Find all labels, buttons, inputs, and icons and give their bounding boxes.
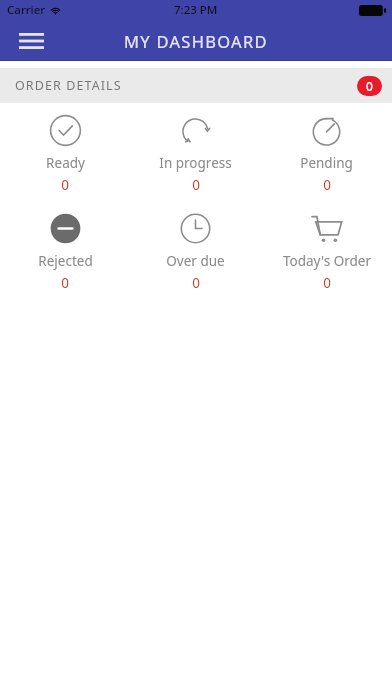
staticText: 0 (366, 78, 373, 94)
button[interactable]: Pending orders (261, 114, 392, 194)
staticText: 0 (323, 274, 331, 292)
button[interactable]: Today's orders (261, 212, 392, 292)
button[interactable]: Ready orders (0, 114, 130, 194)
button[interactable]: Rejected orders (0, 212, 130, 292)
button[interactable]: Open navigation menu (12, 22, 50, 60)
button[interactable]: In progress orders (130, 114, 261, 194)
staticText: Today's Order (283, 252, 371, 270)
button[interactable]: ORDER DETAILS (0, 68, 392, 103)
staticText: Carrier (7, 2, 46, 18)
staticText: Rejected (38, 252, 93, 270)
staticText: In progress (159, 154, 232, 172)
staticText: 0 (323, 176, 331, 194)
staticText: 0 (61, 274, 69, 292)
staticText: Pending (300, 154, 353, 172)
staticText: ORDER DETAILS (15, 77, 122, 94)
staticText: 7:23 PM (174, 2, 218, 18)
button[interactable]: Overdue orders (130, 212, 261, 292)
staticText: MY DASHBOARD (124, 30, 268, 52)
staticText: Over due (166, 252, 225, 270)
staticText: Ready (46, 154, 85, 172)
staticText: 0 (192, 176, 200, 194)
staticText: 0 (61, 176, 69, 194)
staticText: 0 (192, 274, 200, 292)
